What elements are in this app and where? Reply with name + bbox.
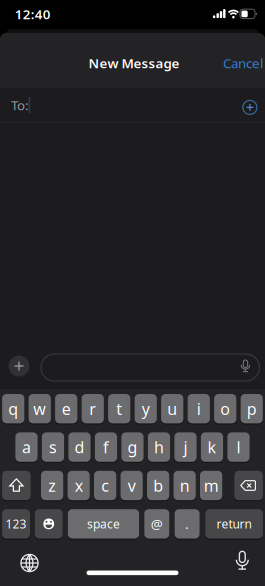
staticText: space [87,516,120,532]
button[interactable]: Apps [8,355,29,376]
staticText: return [217,516,252,532]
button[interactable]: i [188,394,210,423]
staticText: k [207,436,216,458]
button[interactable]: m [200,471,222,500]
button[interactable]: Cancel [223,54,263,72]
staticText: q [8,398,18,419]
staticText: z [48,475,56,496]
button[interactable]: t [108,394,130,423]
staticText: o [220,398,230,419]
button[interactable]: x [67,471,90,500]
button[interactable]: g [121,432,144,462]
button[interactable]: s [42,432,64,462]
staticText: e [62,398,71,419]
staticText: m [204,475,219,496]
staticText: y [142,398,150,419]
button[interactable]: . [175,509,200,539]
button[interactable]: p [241,394,263,423]
button[interactable]: v [120,471,143,500]
button[interactable]: e [55,394,77,423]
button[interactable]: k [201,432,223,462]
button[interactable]: a [15,432,38,462]
button[interactable]: u [161,394,183,423]
button[interactable]: j [174,432,197,462]
button[interactable]: Message [41,354,259,381]
button[interactable]: h [148,432,170,462]
button[interactable]: Delete [234,471,263,500]
button[interactable]: y [135,394,157,423]
button[interactable]: z [41,471,63,500]
staticText: j [183,436,187,458]
button[interactable]: Next Keyboard [16,550,42,576]
button[interactable]: Shift [2,471,31,500]
staticText: b [153,475,163,496]
staticText: . [185,515,189,533]
button[interactable]: l [227,432,250,462]
staticText: r [89,398,96,419]
staticText: u [167,398,177,419]
staticText: f [103,436,109,458]
staticText: 123 [6,516,27,532]
staticText: d [74,436,84,458]
button[interactable]: r [82,394,104,423]
staticText: Cancel [223,54,263,72]
staticText: a [22,436,31,458]
staticText: i [197,398,201,419]
button[interactable]: @ [144,509,169,539]
staticText: h [154,436,164,458]
staticText: w [33,398,46,419]
button[interactable]: Add Contact [243,100,257,114]
staticText: @ [151,515,163,533]
staticText: g [127,436,137,458]
staticText: v [128,475,136,496]
button[interactable]: Dictation [231,550,253,574]
staticText: l [236,436,240,458]
button[interactable]: w [29,394,51,423]
button[interactable]: c [94,471,116,500]
staticText: c [101,475,109,496]
staticText: To: [11,96,29,114]
button[interactable]: space [68,509,139,539]
button[interactable]: b [147,471,169,500]
staticText: t [116,398,122,419]
staticText: p [247,398,257,419]
staticText: s [49,436,57,458]
staticText: 12:40 [15,5,51,23]
button[interactable]: 123 [2,509,30,539]
button[interactable]: o [214,394,236,423]
button[interactable]: return [205,509,263,539]
button[interactable]: Emoji [35,509,63,539]
button[interactable]: q [2,394,24,423]
staticText: x [75,475,83,496]
button[interactable]: f [95,432,117,462]
button[interactable]: To [0,88,230,122]
button[interactable]: n [173,471,196,500]
staticText: New Message [88,54,179,72]
staticText: n [180,475,190,496]
button[interactable]: d [68,432,91,462]
